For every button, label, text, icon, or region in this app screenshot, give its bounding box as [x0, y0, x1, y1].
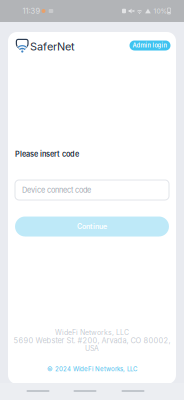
staticText: 5690 Webster St. #200, Arvada, CO 80002, [13, 336, 170, 345]
button[interactable]: Back [18, 383, 58, 399]
staticText: 10% [153, 7, 167, 15]
staticText: SaferNet [30, 40, 75, 53]
staticText: Continue [77, 222, 107, 231]
button[interactable]: Device connect code [15, 180, 169, 200]
staticText: Please insert code [15, 150, 79, 158]
button[interactable]: Admin login [129, 40, 170, 50]
staticText: USA [85, 344, 99, 353]
staticText: WideFi Networks, LLC [55, 328, 129, 337]
button[interactable]: Continue [15, 216, 169, 236]
staticText: Admin login [132, 42, 167, 49]
button[interactable]: Recents [113, 383, 153, 399]
button[interactable]: Home [65, 383, 105, 399]
staticText: 11:39 [22, 6, 40, 15]
staticText: © 2024 WideFi Networks, LLC [47, 365, 137, 373]
staticText: Device connect code [22, 186, 91, 194]
